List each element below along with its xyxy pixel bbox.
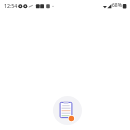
staticText: 68% [112, 2, 122, 9]
staticText: 12:54 [4, 2, 18, 9]
button[interactable]: No tasks yet [53, 96, 82, 125]
